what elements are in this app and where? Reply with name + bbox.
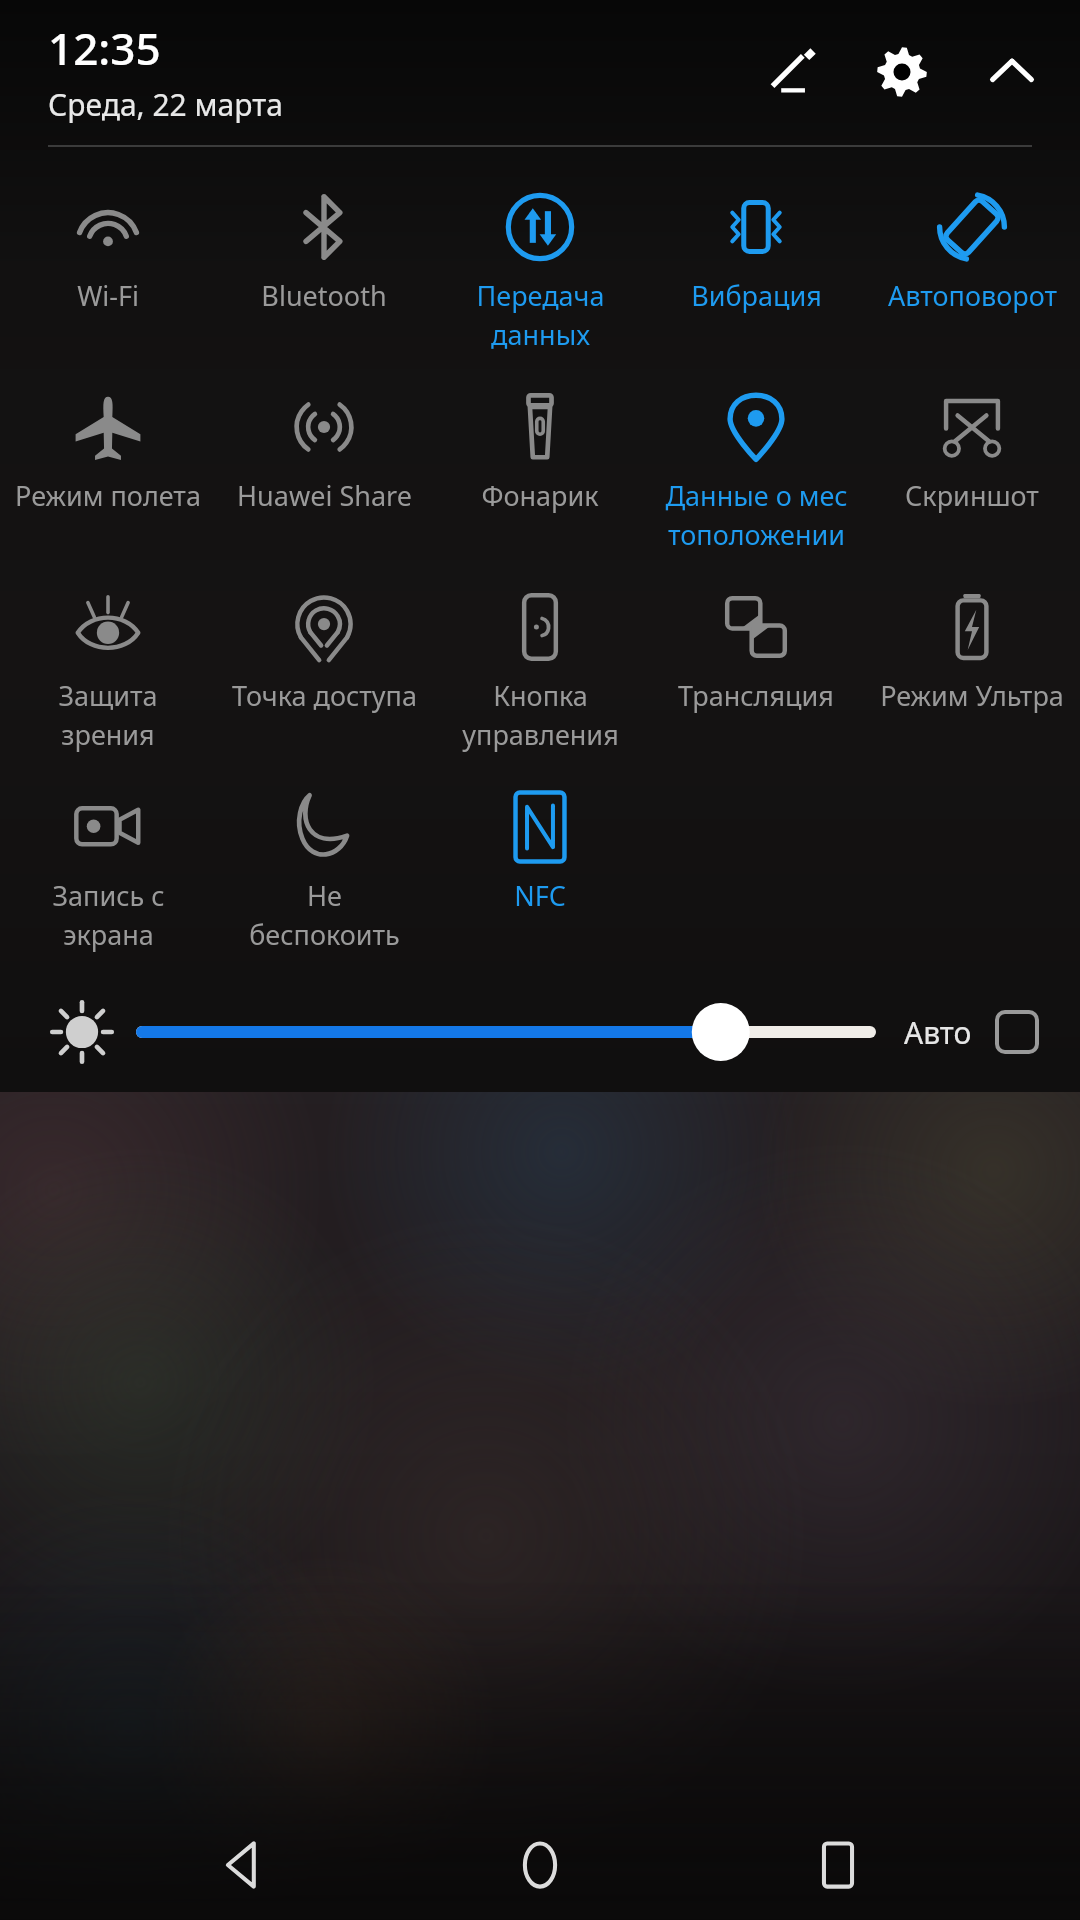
staticText: Не беспокоить bbox=[249, 877, 400, 953]
button[interactable]: Settings bbox=[864, 34, 940, 110]
staticText: Данные о мес тоположении bbox=[665, 477, 848, 553]
staticText: Трансляция bbox=[678, 677, 834, 714]
staticText: Фонарик bbox=[481, 477, 599, 514]
button[interactable]: Автоповорот bbox=[864, 177, 1080, 377]
staticText: 12:35 bbox=[48, 18, 161, 78]
staticText: Скриншот bbox=[905, 477, 1039, 514]
button[interactable]: Wi-Fi bbox=[0, 177, 216, 377]
button[interactable]: Режим Ультра bbox=[864, 577, 1080, 777]
button[interactable]: Защита зрения bbox=[0, 577, 216, 777]
button[interactable]: Авто bbox=[904, 1009, 1040, 1055]
staticText: Режим полета bbox=[15, 477, 201, 514]
button[interactable]: Трансляция bbox=[648, 577, 864, 777]
staticText: Режим Ультра bbox=[880, 677, 1064, 714]
button[interactable]: Edit bbox=[754, 34, 830, 110]
button[interactable]: Recents bbox=[783, 1810, 893, 1920]
button[interactable]: Back bbox=[188, 1810, 298, 1920]
button[interactable]: Скриншот bbox=[864, 377, 1080, 577]
button[interactable]: Запись с экрана bbox=[0, 777, 216, 977]
button[interactable] bbox=[142, 992, 870, 1072]
staticText: Запись с экрана bbox=[52, 877, 165, 953]
staticText: Точка доступа bbox=[232, 677, 417, 714]
button[interactable]: Режим полета bbox=[0, 377, 216, 577]
staticText: Huawei Share bbox=[237, 477, 412, 514]
button[interactable]: Вибрация bbox=[648, 177, 864, 377]
staticText: Среда, 22 марта bbox=[48, 84, 283, 125]
staticText: Защита зрения bbox=[58, 677, 158, 753]
staticText: Передача данных bbox=[476, 277, 605, 353]
button[interactable]: Huawei Share bbox=[216, 377, 432, 577]
button[interactable]: Home bbox=[485, 1810, 595, 1920]
staticText: Авто bbox=[904, 1012, 972, 1053]
staticText: Bluetooth bbox=[261, 277, 387, 314]
button[interactable]: Данные о мес тоположении bbox=[648, 377, 864, 577]
staticText: NFC bbox=[514, 877, 566, 914]
staticText: Кнопка управления bbox=[462, 677, 619, 753]
button[interactable]: Передача данных bbox=[432, 177, 648, 377]
button[interactable]: Кнопка управления bbox=[432, 577, 648, 777]
button[interactable]: Collapse bbox=[974, 34, 1050, 110]
button[interactable]: Brightness bbox=[40, 990, 124, 1074]
staticText: Вибрация bbox=[691, 277, 822, 314]
button[interactable]: Не беспокоить bbox=[216, 777, 432, 977]
button[interactable]: Точка доступа bbox=[216, 577, 432, 777]
button[interactable]: Bluetooth bbox=[216, 177, 432, 377]
button[interactable]: Фонарик bbox=[432, 377, 648, 577]
button[interactable]: NFC bbox=[432, 777, 648, 977]
staticText: Автоповорот bbox=[888, 277, 1057, 314]
staticText: Wi-Fi bbox=[77, 277, 139, 314]
